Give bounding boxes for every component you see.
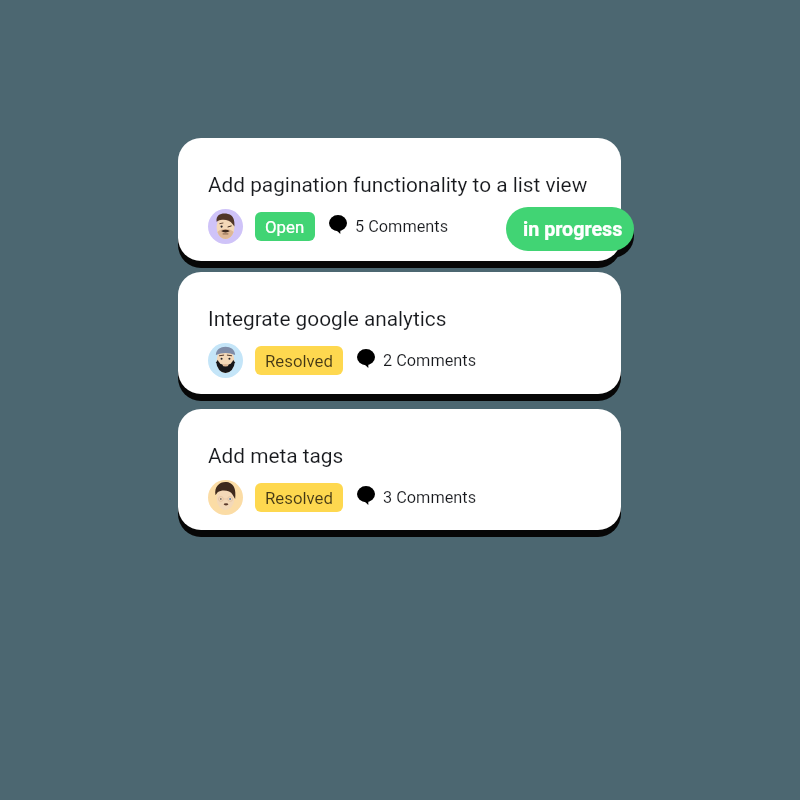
other: Comments: [329, 215, 347, 234]
button[interactable]: in progress: [506, 207, 634, 251]
button[interactable]: Add meta tags: [178, 409, 621, 530]
button[interactable]: Add pagination functionality to a list v…: [178, 138, 621, 261]
staticText: 2 Comments: [383, 351, 477, 370]
staticText: Add pagination functionality to a list v…: [208, 173, 588, 197]
other: Comments: [357, 486, 375, 505]
staticText: in progress: [523, 218, 623, 241]
staticText: 5 Comments: [355, 217, 449, 236]
staticText: 3 Comments: [383, 488, 477, 507]
button[interactable]: Resolved: [255, 483, 343, 512]
staticText: Resolved: [265, 351, 333, 371]
staticText: Add meta tags: [208, 444, 344, 468]
staticText: Integrate google analytics: [208, 307, 447, 331]
button[interactable]: Resolved: [255, 346, 343, 375]
other: Comments: [357, 349, 375, 368]
button[interactable]: Open: [255, 212, 315, 241]
button[interactable]: Integrate google analytics: [178, 272, 621, 394]
staticText: Open: [265, 217, 305, 237]
staticText: Resolved: [265, 488, 333, 508]
